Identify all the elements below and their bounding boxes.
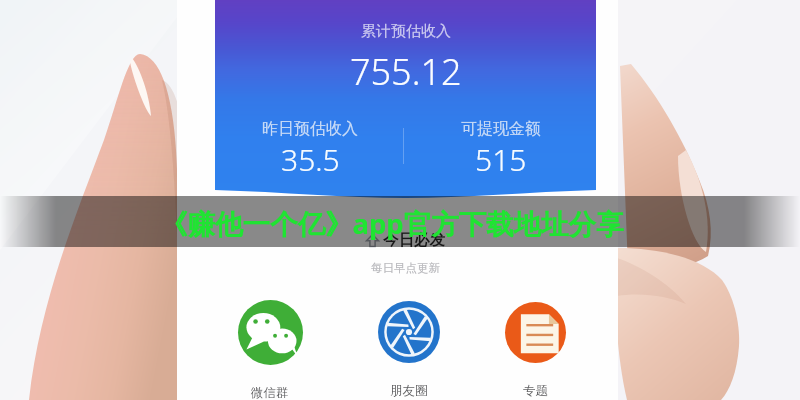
staticText: 35.5	[281, 139, 340, 180]
staticText: 今日必发	[383, 230, 445, 250]
staticText: 《赚他一个亿》app官方下载地址分享	[160, 205, 624, 243]
button[interactable]: Moments	[371, 301, 447, 399]
staticText: 专题	[523, 383, 548, 399]
staticText: 累计预估收入	[361, 22, 451, 41]
staticText: 每日早点更新	[371, 261, 440, 275]
button[interactable]: WeChat group	[232, 300, 308, 400]
staticText: 昨日预估收入	[262, 119, 358, 139]
staticText: 755.12	[350, 47, 462, 96]
staticText: 微信群	[251, 385, 289, 400]
button[interactable]: Topics	[497, 302, 573, 399]
staticText: 515	[475, 139, 527, 180]
staticText: 朋友圈	[390, 383, 428, 399]
staticText: 可提现金额	[461, 119, 541, 139]
